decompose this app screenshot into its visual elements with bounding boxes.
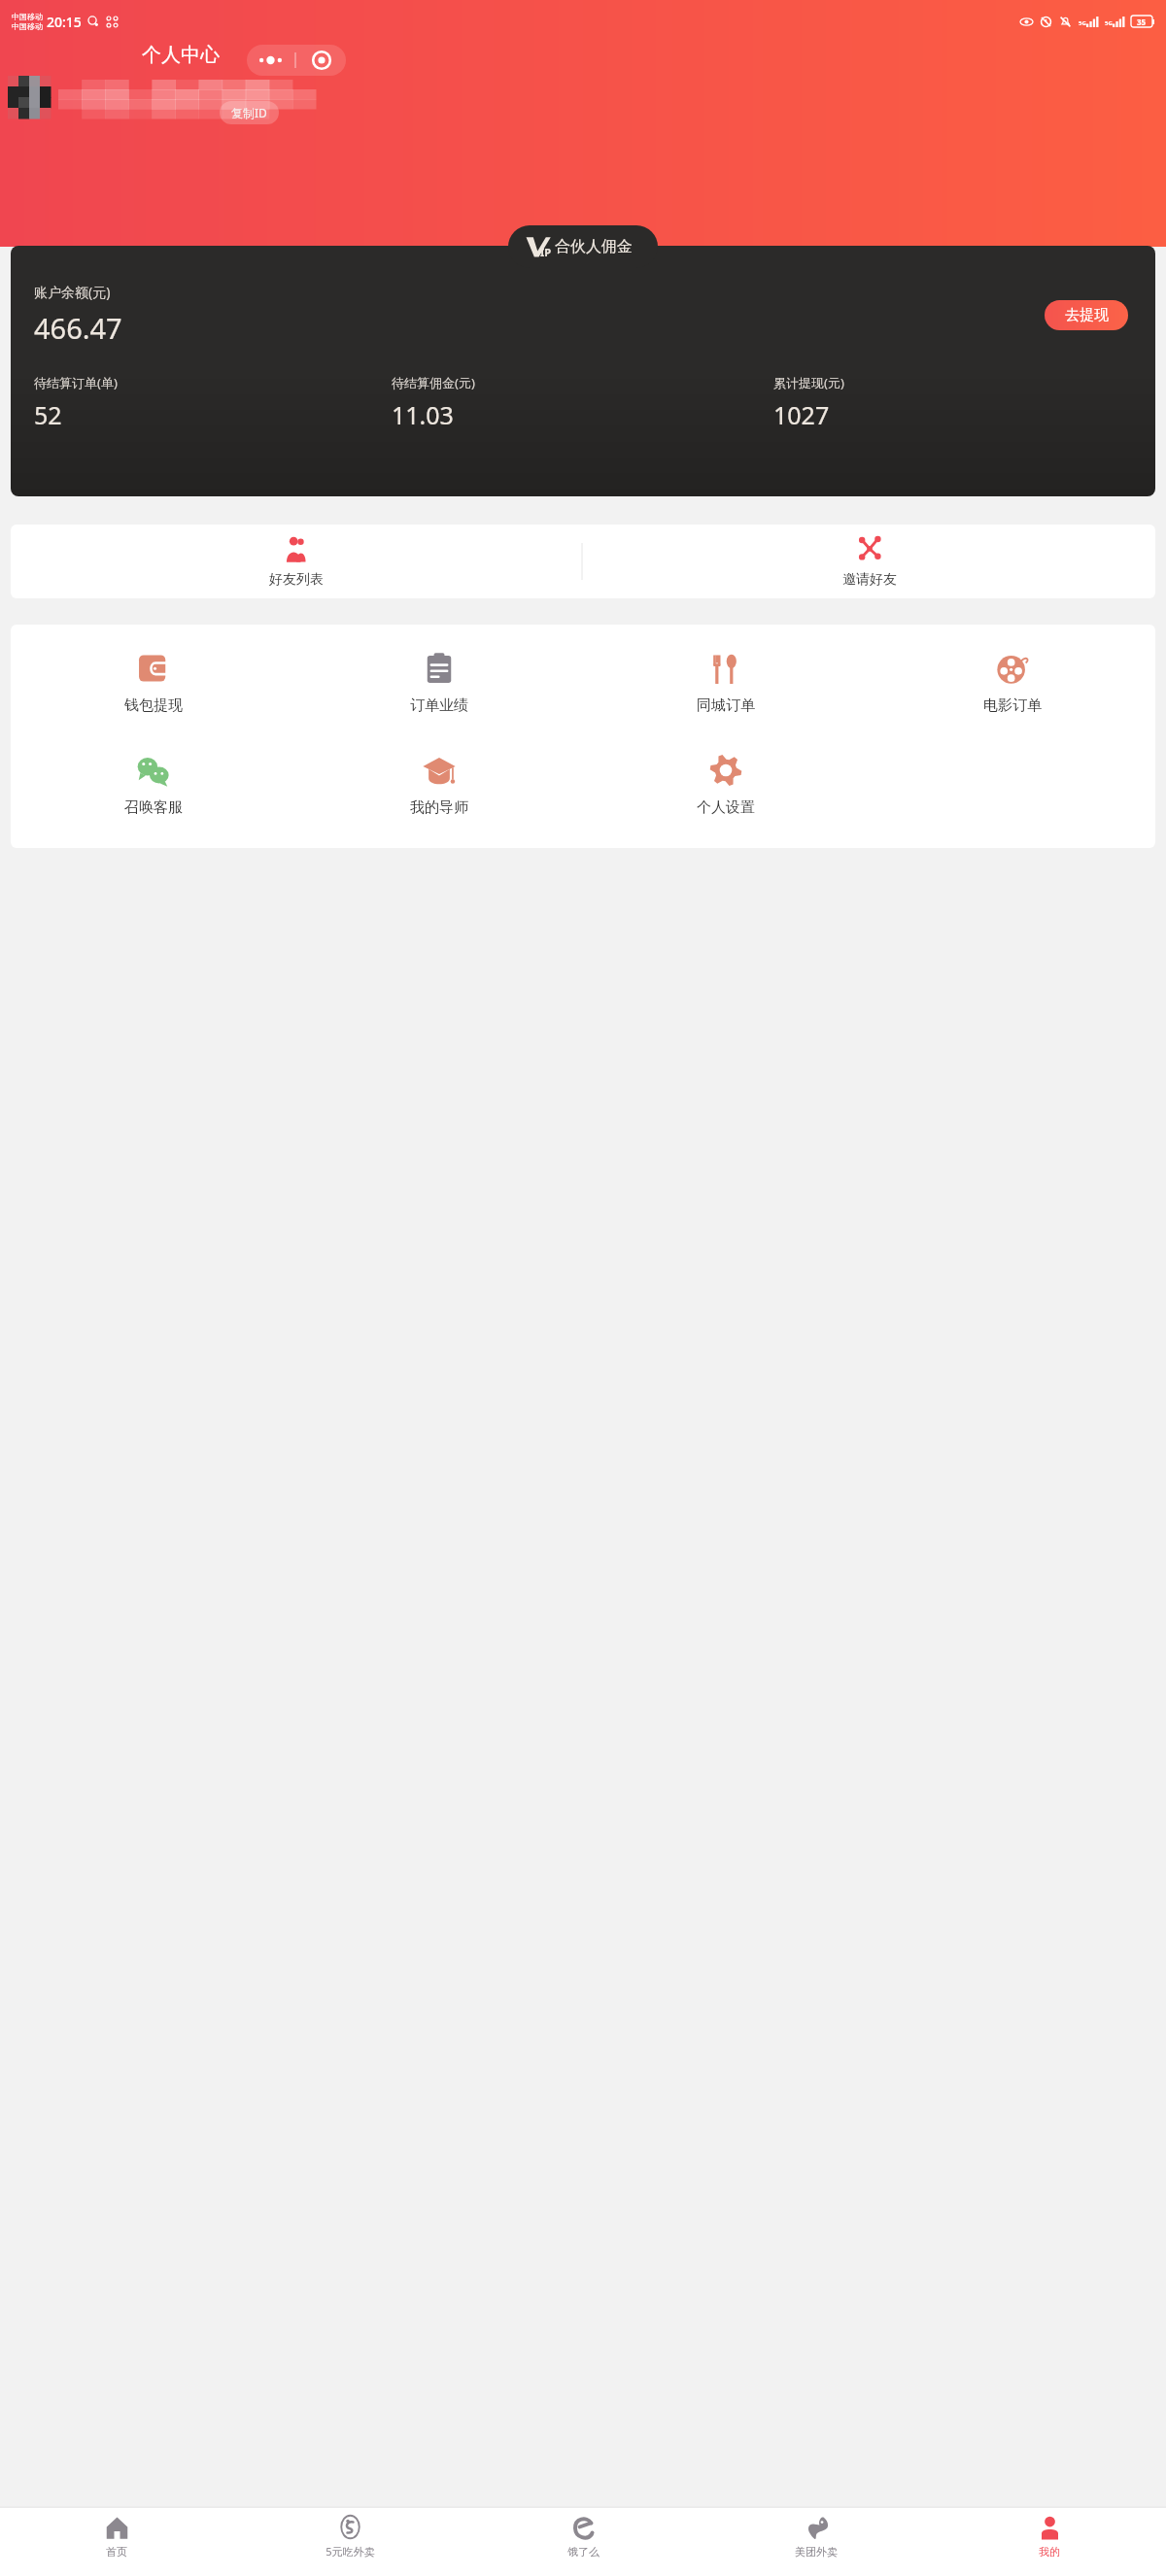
staticText: 累计提现(元) (773, 374, 844, 391)
staticText: 个人中心 (142, 43, 220, 67)
button[interactable]: 召唤客服 (11, 744, 296, 827)
staticText: 好友列表 (269, 571, 324, 589)
staticText: 饿了么 (567, 2545, 600, 2559)
staticText: 美团外卖 (795, 2545, 838, 2559)
button[interactable]: 钱包提现 (11, 642, 296, 725)
staticText: 账户余额(元) (34, 283, 111, 301)
staticText: 中国移动 (12, 21, 43, 31)
button[interactable]: 美团外卖 (700, 2508, 933, 2565)
staticText: 首页 (106, 2545, 127, 2559)
button[interactable]: 我的导师 (296, 744, 582, 827)
staticText: 我的 (1039, 2545, 1060, 2559)
staticText: 邀请好友 (842, 571, 897, 589)
staticText: 20:15 (47, 13, 82, 31)
button[interactable]: IP (508, 225, 658, 268)
button[interactable]: 个人设置 (582, 744, 869, 827)
staticText: 订单业绩 (410, 696, 468, 715)
button[interactable]: More (247, 45, 295, 76)
staticText: 复制ID (231, 105, 267, 120)
button[interactable]: Close (296, 45, 346, 76)
staticText: 待结算佣金(元) (392, 374, 475, 391)
button[interactable]: 同城订单 (582, 642, 869, 725)
button[interactable]: 首页 (0, 2508, 233, 2565)
staticText: 5G (1079, 19, 1086, 27)
staticText: 个人设置 (697, 798, 755, 817)
button[interactable]: 饿了么 (466, 2508, 700, 2565)
button[interactable]: 订单业绩 (296, 642, 582, 725)
button[interactable]: 邀请好友 (583, 525, 1155, 598)
staticText: 11.03 (392, 398, 454, 431)
staticText: 中国移动 (12, 12, 43, 21)
staticText: 35 (1137, 17, 1147, 27)
staticText: 召唤客服 (124, 798, 183, 817)
staticText: 去提现 (1065, 306, 1109, 324)
button[interactable]: 好友列表 (11, 525, 582, 598)
staticText: 钱包提现 (124, 696, 183, 715)
staticText: 52 (34, 398, 62, 431)
staticText: 466.47 (34, 309, 122, 347)
staticText: 待结算订单(单) (34, 374, 118, 391)
staticText: 5元吃外卖 (326, 2544, 375, 2559)
staticText: 电影订单 (983, 696, 1042, 715)
button[interactable]: 电影订单 (869, 642, 1155, 725)
button[interactable]: 5元吃外卖 (233, 2508, 466, 2565)
staticText: 我的导师 (410, 798, 468, 817)
button[interactable]: 复制ID (220, 101, 279, 124)
staticText: 5G (1105, 19, 1113, 27)
button[interactable]: 去提现 (1045, 300, 1128, 330)
button[interactable]: 我的 (933, 2508, 1166, 2565)
staticText: 合伙人佣金 (555, 237, 633, 256)
staticText: 1027 (773, 398, 830, 431)
staticText: IP (540, 245, 552, 259)
staticText: 同城订单 (697, 696, 755, 715)
